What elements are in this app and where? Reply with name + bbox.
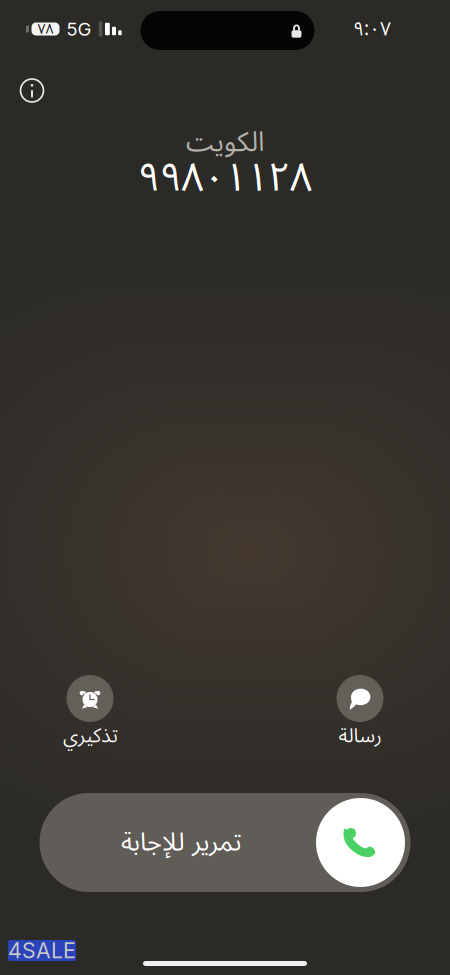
staticText: ٧٨	[37, 14, 53, 44]
staticText: 5G	[66, 18, 91, 40]
staticText: 4SALE	[8, 938, 76, 963]
staticText: تذكيري	[62, 715, 117, 757]
button[interactable]: Answer call	[316, 798, 405, 887]
staticText: ٩٩٨٠١١٢٨	[137, 136, 312, 220]
staticText: تمرير للإجابة	[120, 816, 241, 869]
button[interactable]: Call details	[10, 68, 54, 112]
button[interactable]: رسالة	[300, 675, 420, 750]
staticText: رسالة	[338, 715, 382, 757]
staticText: الكويت	[185, 114, 264, 171]
staticText: ٩:٠٧	[353, 9, 391, 49]
button[interactable]: تذكيري	[30, 675, 150, 750]
